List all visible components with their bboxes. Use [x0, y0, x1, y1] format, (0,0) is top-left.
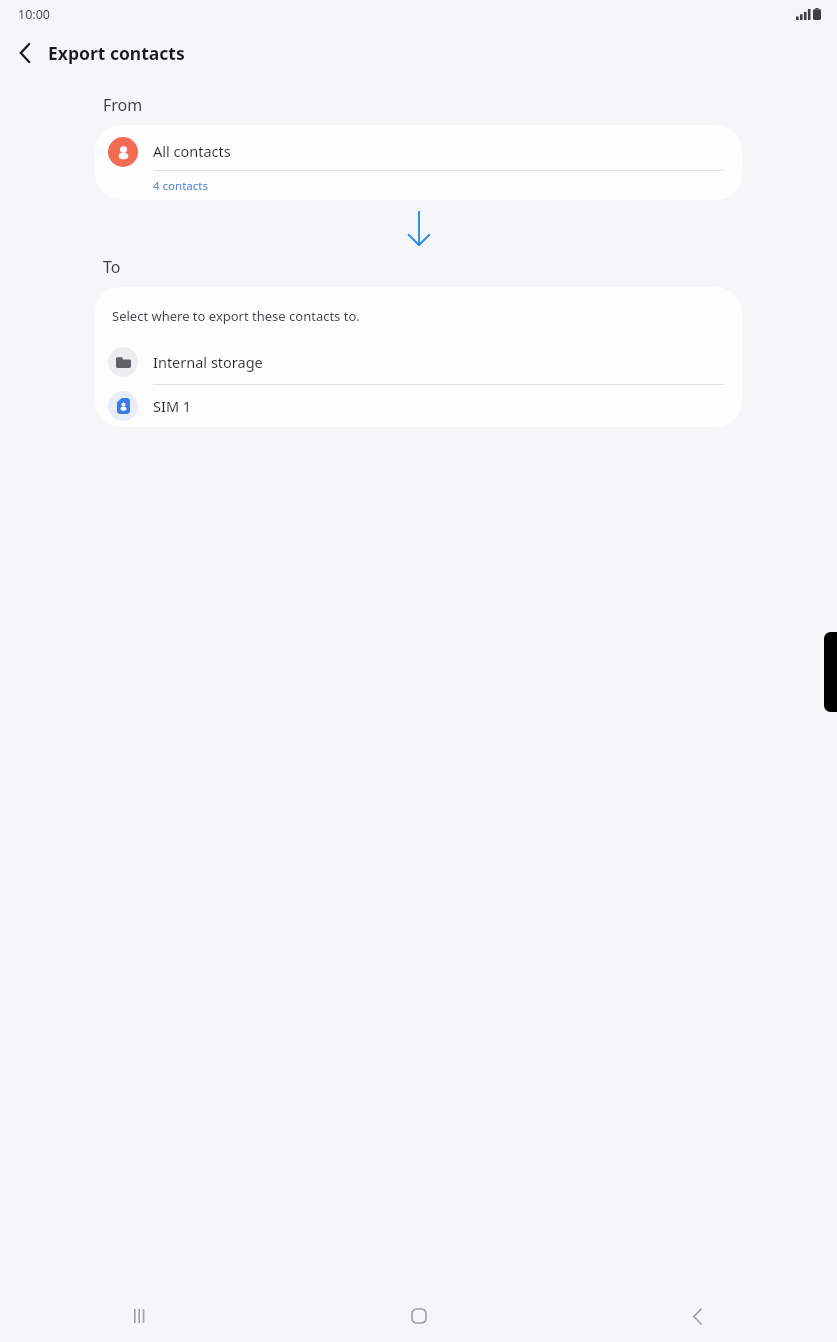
button[interactable]: Back — [558, 1290, 837, 1342]
staticText: 10:00 — [18, 6, 50, 23]
button[interactable]: Back — [6, 34, 44, 72]
button[interactable]: SIM 1 — [95, 385, 742, 427]
staticText: SIM 1 — [153, 396, 192, 416]
button[interactable]: Recent apps — [0, 1290, 279, 1342]
button[interactable]: All contacts — [95, 125, 742, 200]
button[interactable]: Home — [279, 1290, 558, 1342]
staticText: 4 contacts — [153, 178, 208, 194]
button[interactable]: Edge panel handle — [824, 632, 837, 712]
staticText: Select where to export these contacts to… — [112, 307, 360, 325]
staticText: From — [103, 94, 143, 116]
staticText: Internal storage — [153, 352, 263, 372]
staticText: To — [103, 256, 121, 278]
staticText: Export contacts — [48, 41, 185, 65]
button[interactable]: Internal storage — [95, 339, 742, 385]
staticText: All contacts — [153, 141, 231, 161]
